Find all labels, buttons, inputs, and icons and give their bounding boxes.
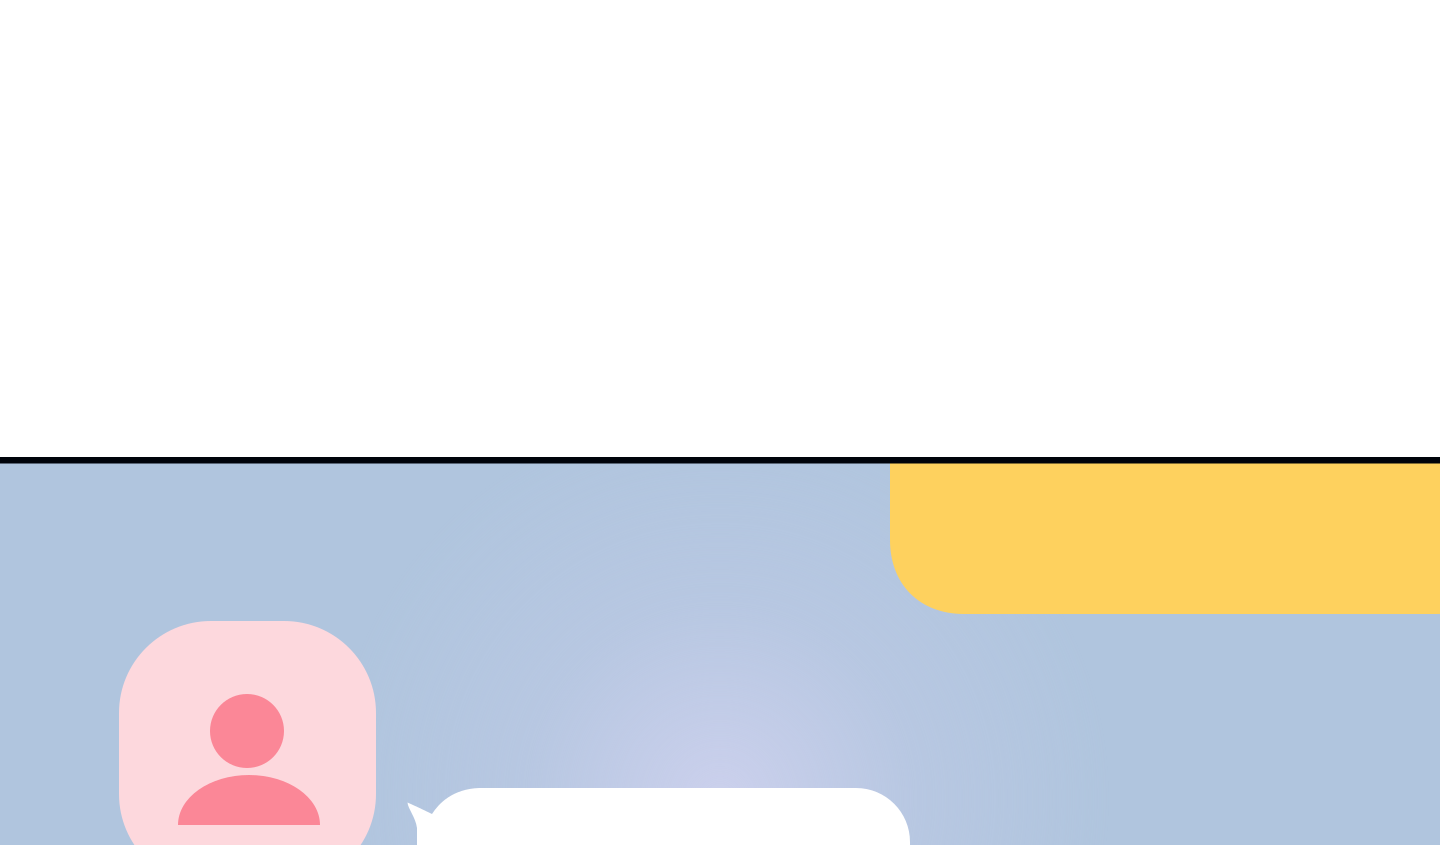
button[interactable]: Received message xyxy=(0,0,1440,845)
button[interactable]: Sent message xyxy=(0,0,1440,845)
button[interactable]: Contact photo xyxy=(0,0,1440,845)
